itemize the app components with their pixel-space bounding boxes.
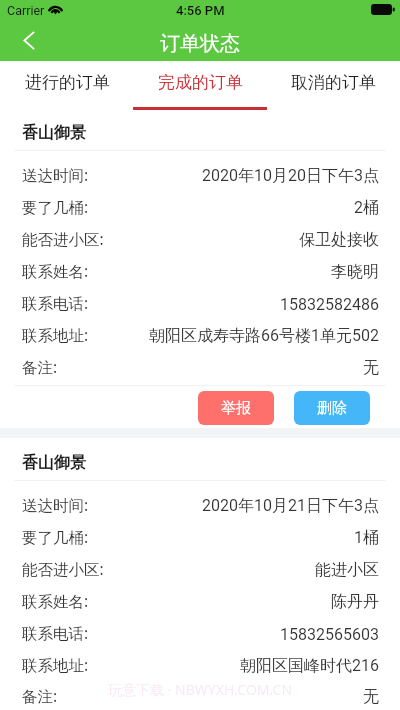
staticText: 无 [363, 358, 379, 378]
staticText: 举报 [221, 399, 251, 418]
staticText: 玩意下载 · NBWYXH.COM.CN [108, 680, 293, 699]
staticText: 能进小区 [315, 560, 379, 580]
staticText: 香山御景 [22, 453, 86, 473]
staticText: 删除 [317, 399, 347, 418]
staticText: 送达时间: [22, 164, 89, 185]
staticText: 15832582486 [280, 295, 379, 314]
staticText: 2桶 [354, 198, 379, 218]
staticText: 2020年10月21日下午3点 [202, 496, 379, 516]
staticText: 1桶 [354, 528, 379, 548]
staticText: Carrier [7, 3, 45, 18]
staticText: 联系地址: [22, 324, 89, 345]
staticText: 保卫处接收 [299, 230, 379, 250]
staticText: 联系电话: [22, 292, 89, 313]
staticText: 联系电话: [22, 622, 89, 643]
staticText: 要了几桶: [22, 526, 89, 547]
button[interactable]: 删除 [294, 391, 370, 425]
staticText: 能否进小区: [22, 558, 104, 579]
staticText: 李晓明 [331, 262, 379, 282]
button[interactable]: 取消的订单 [267, 61, 400, 108]
staticText: 进行的订单 [25, 72, 110, 93]
staticText: 4:56 PM [176, 3, 225, 18]
staticText: 联系姓名: [22, 260, 89, 281]
staticText: 订单状态 [160, 31, 240, 56]
staticText: 送达时间: [22, 494, 89, 515]
staticText: 完成的订单 [158, 72, 243, 93]
button[interactable]: 进行的订单 [0, 61, 134, 108]
staticText: 备注: [22, 356, 58, 377]
staticText: 要了几桶: [22, 196, 89, 217]
button[interactable]: 举报 [198, 391, 274, 425]
staticText: 陈丹丹 [331, 592, 379, 612]
staticText: 能否进小区: [22, 228, 104, 249]
staticText: 无 [363, 687, 379, 707]
staticText: 联系地址: [22, 654, 89, 675]
staticText: 朝阳区成寿寺路66号楼1单元502 [149, 326, 379, 346]
staticText: 朝阳区国峰时代216 [240, 656, 379, 676]
staticText: 2020年10月20日下午3点 [202, 166, 379, 186]
staticText: 香山御景 [22, 123, 86, 143]
button[interactable]: Back [0, 26, 50, 61]
staticText: 取消的订单 [291, 72, 376, 93]
button[interactable]: 完成的订单 [134, 61, 267, 108]
staticText: 备注: [22, 685, 58, 706]
staticText: 15832565603 [280, 625, 379, 644]
staticText: 联系姓名: [22, 590, 89, 611]
